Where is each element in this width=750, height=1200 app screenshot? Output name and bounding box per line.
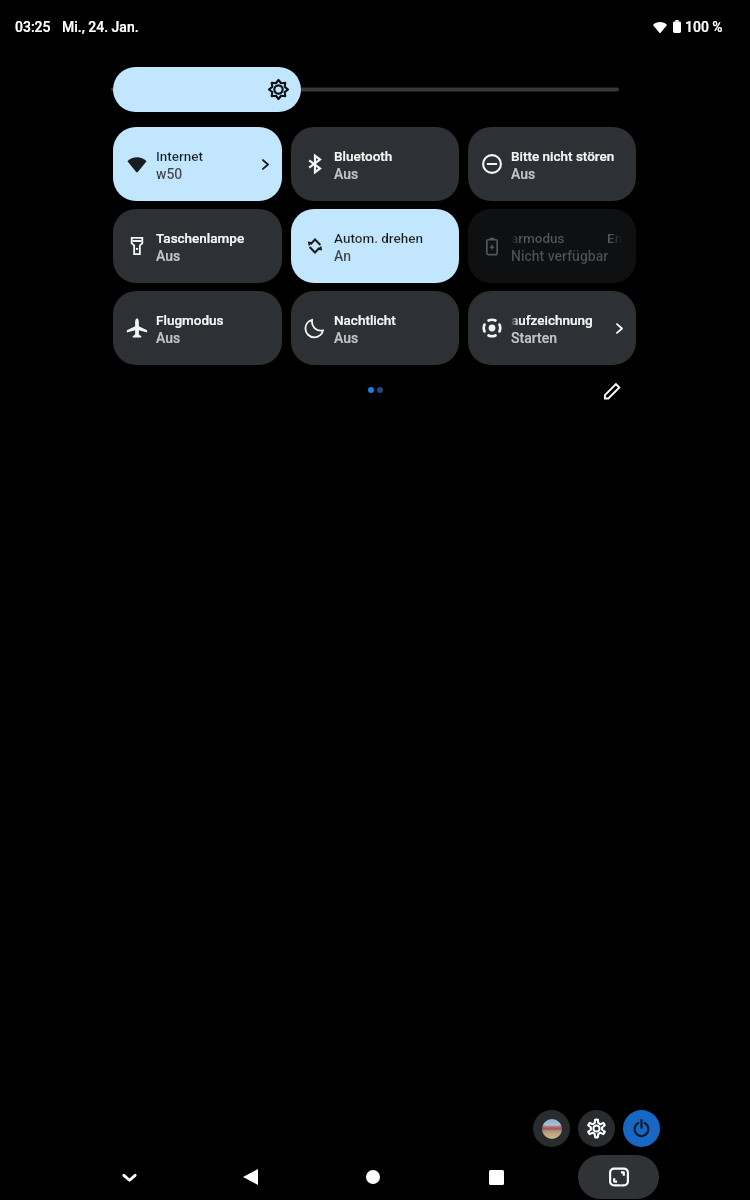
- button[interactable]: Ein/Aus: [623, 1110, 660, 1147]
- staticText: armodus: [511, 230, 565, 246]
- staticText: Nachtlicht: [334, 312, 396, 328]
- button[interactable]: Bearbeiten: [597, 375, 627, 405]
- button[interactable]: Autom. drehen: [291, 209, 459, 283]
- button[interactable]: aufzeichnung: [468, 291, 636, 365]
- staticText: Internet: [156, 148, 204, 164]
- button[interactable]: Nutzer: [533, 1110, 570, 1147]
- button[interactable]: Startbildschirm: [351, 1155, 395, 1199]
- staticText: Mi., 24. Jan.: [62, 19, 139, 35]
- staticText: Aus: [156, 330, 181, 346]
- staticText: 03:25: [15, 19, 51, 35]
- staticText: An: [334, 248, 351, 264]
- staticText: Autom. drehen: [334, 230, 423, 246]
- staticText: w50: [156, 166, 183, 182]
- button[interactable]: armodus: [468, 209, 636, 283]
- button[interactable]: Einstellungen: [578, 1110, 615, 1147]
- button[interactable]: Flugmodus: [113, 291, 282, 365]
- button[interactable]: Taschenlampe: [113, 209, 282, 283]
- staticText: Taschenlampe: [156, 230, 245, 246]
- staticText: aufzeichnung: [511, 312, 593, 328]
- staticText: 100 %: [685, 19, 723, 35]
- staticText: Aus: [156, 248, 181, 264]
- button[interactable]: Übersicht: [474, 1155, 518, 1199]
- staticText: Flugmodus: [156, 312, 224, 328]
- staticText: Aus: [334, 330, 359, 346]
- staticText: Aus: [511, 166, 536, 182]
- staticText: Nicht verfügbar: [511, 248, 609, 264]
- button[interactable]: Zurück: [228, 1155, 272, 1199]
- staticText: Bitte nicht stören: [511, 148, 615, 164]
- staticText: En: [607, 230, 623, 246]
- staticText: Aus: [334, 166, 359, 182]
- button[interactable]: Internet: [113, 127, 282, 201]
- button[interactable]: Helligkeit: [113, 67, 301, 112]
- staticText: Bluetooth: [334, 148, 393, 164]
- button[interactable]: Bitte nicht stören: [468, 127, 636, 201]
- button[interactable]: Nachtlicht: [291, 291, 459, 365]
- button[interactable]: Screenshot: [578, 1155, 659, 1199]
- staticText: Starten: [511, 330, 557, 346]
- button[interactable]: Bluetooth: [291, 127, 459, 201]
- button[interactable]: Tastatur ausblenden: [107, 1155, 151, 1199]
